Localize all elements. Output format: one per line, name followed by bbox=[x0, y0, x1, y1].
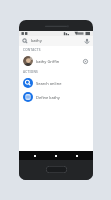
button[interactable]: Back bbox=[30, 151, 40, 160]
button[interactable]: More options bbox=[82, 58, 89, 65]
staticText: CONTACTS bbox=[23, 48, 41, 52]
button[interactable]: Home bbox=[51, 151, 61, 160]
other: Home button bbox=[46, 166, 67, 173]
staticText: kathy bbox=[31, 38, 84, 44]
staticText: ACTIONS bbox=[23, 70, 39, 74]
button[interactable]: Recent apps bbox=[72, 151, 82, 160]
button[interactable]: kathy Griffin bbox=[19, 54, 93, 68]
staticText: Search online bbox=[36, 81, 89, 86]
button[interactable]: Define kathy bbox=[19, 90, 93, 104]
button[interactable]: Voice search bbox=[84, 38, 90, 44]
button[interactable]: Search online bbox=[19, 76, 93, 90]
staticText: Define kathy bbox=[36, 95, 89, 100]
staticText: kathy Griffin bbox=[36, 59, 82, 64]
button[interactable]: kathy bbox=[19, 36, 93, 46]
